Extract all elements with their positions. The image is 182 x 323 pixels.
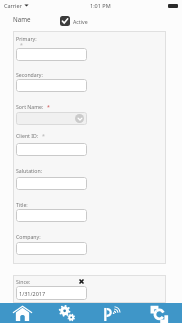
button[interactable]	[16, 177, 87, 190]
button[interactable]	[16, 48, 87, 61]
staticText: Carrier	[4, 2, 22, 9]
staticText: Client ID:	[16, 132, 39, 139]
button[interactable]: Home	[0, 303, 45, 323]
button[interactable]: Sort Name dropdown	[16, 112, 87, 125]
staticText: Secondary:	[16, 71, 43, 78]
button[interactable]: Active	[60, 16, 88, 26]
button[interactable]	[16, 209, 87, 222]
staticText: Active	[73, 18, 88, 25]
button[interactable]: Settings	[45, 303, 90, 323]
staticText: Primary:	[16, 35, 37, 42]
staticText: 1:01 PM	[90, 2, 111, 9]
button[interactable]	[16, 242, 87, 255]
staticText: Sort Name:	[16, 103, 44, 110]
button[interactable]	[16, 79, 87, 92]
staticText: Title:	[16, 201, 28, 208]
staticText: Salutation:	[16, 167, 43, 174]
staticText: Name	[13, 15, 31, 23]
button[interactable]: Messages	[90, 303, 136, 323]
staticText: *	[47, 103, 50, 110]
staticText: *	[20, 41, 23, 48]
staticText: Since:	[16, 278, 31, 285]
staticText: *	[42, 132, 45, 139]
staticText: 1/31/2017	[19, 290, 46, 297]
button[interactable]	[16, 143, 87, 156]
staticText: Company:	[16, 233, 41, 240]
button[interactable]: Sync	[136, 303, 182, 323]
button[interactable]: Clear date	[78, 278, 84, 284]
button[interactable]: 1/31/2017	[16, 286, 87, 300]
